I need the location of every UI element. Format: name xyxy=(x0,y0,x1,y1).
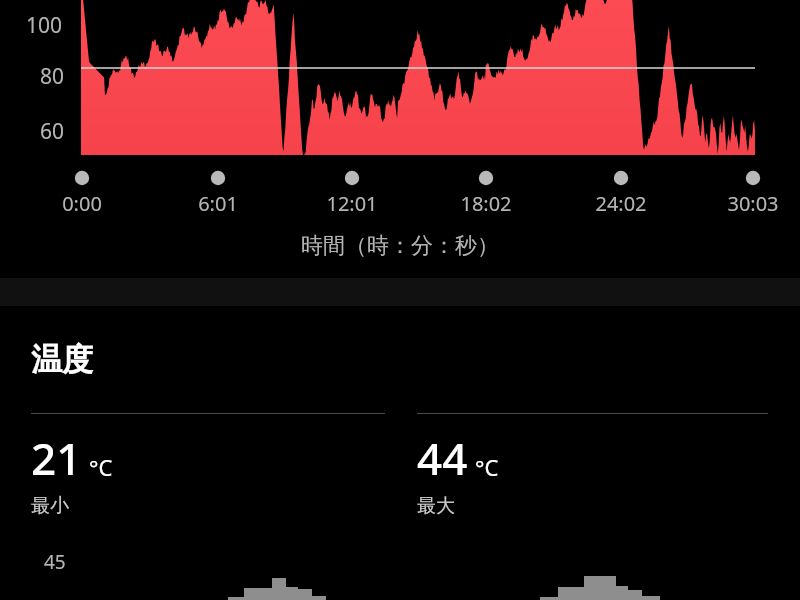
staticText: 時間（時：分：秒） xyxy=(0,232,800,260)
staticText: 18:02 xyxy=(436,190,536,217)
staticText: 最大 xyxy=(417,494,455,518)
staticText: 60 xyxy=(40,117,65,146)
staticText: °C xyxy=(475,452,499,482)
staticText: 温度 xyxy=(31,340,93,379)
staticText: 24:02 xyxy=(571,190,671,217)
staticText: 21 xyxy=(31,428,82,488)
staticText: 6:01 xyxy=(168,190,268,217)
button[interactable]: 44 xyxy=(417,413,768,518)
staticText: 100 xyxy=(26,11,63,40)
staticText: 80 xyxy=(40,62,65,91)
staticText: 12:01 xyxy=(302,190,402,217)
staticText: 44 xyxy=(417,428,468,488)
staticText: 30:03 xyxy=(703,190,800,217)
staticText: 45 xyxy=(44,549,66,575)
button[interactable]: 21 xyxy=(31,413,385,518)
staticText: °C xyxy=(89,452,113,482)
staticText: 最小 xyxy=(31,494,69,518)
staticText: 0:00 xyxy=(32,190,132,217)
